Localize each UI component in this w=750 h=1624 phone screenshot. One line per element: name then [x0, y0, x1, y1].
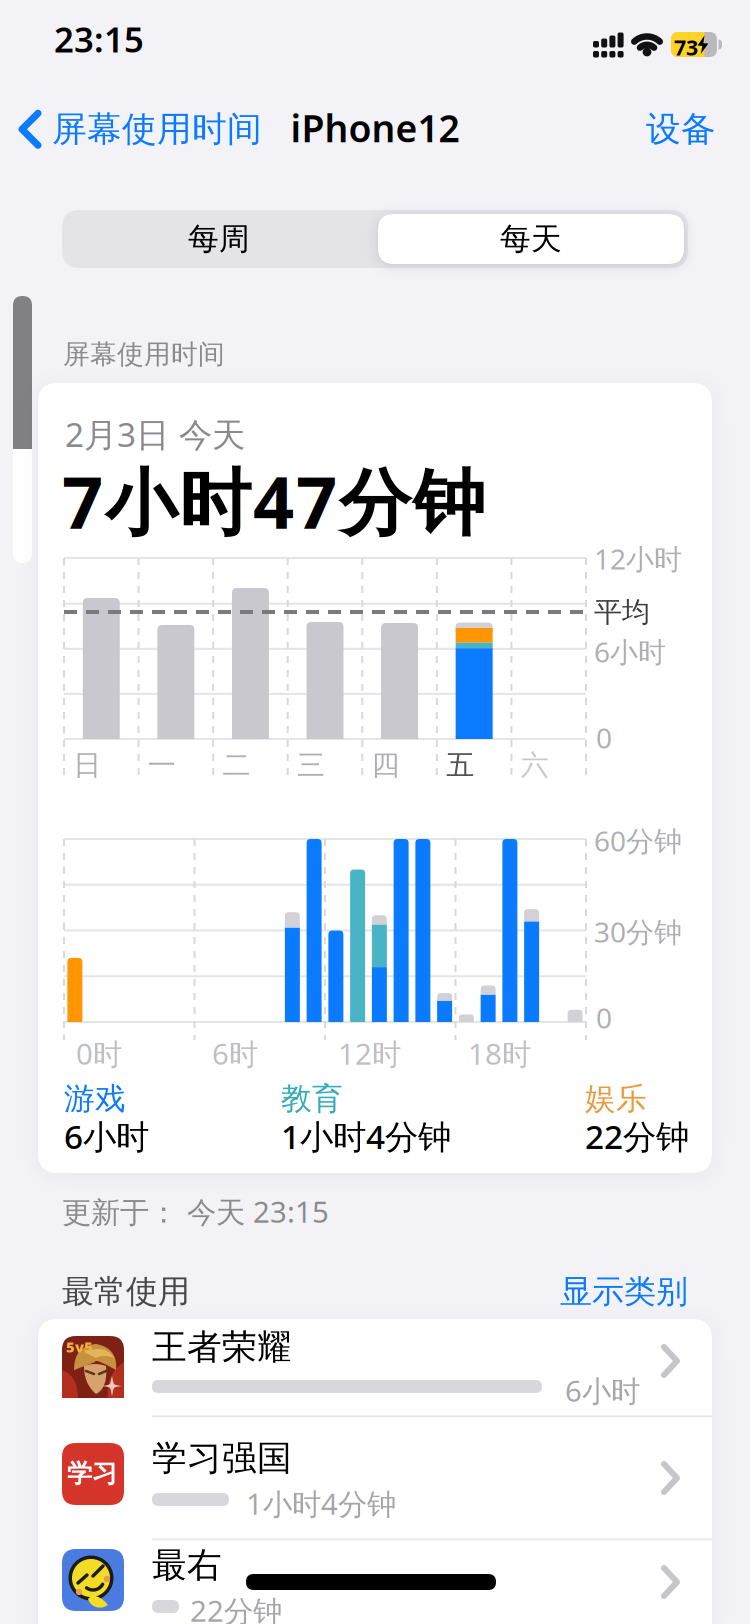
staticText: 教育	[281, 1080, 343, 1118]
button[interactable]: 最右	[38, 1539, 712, 1624]
staticText: 0	[596, 999, 612, 1036]
button[interactable]: 显示类别	[488, 1272, 688, 1311]
staticText: 屏幕使用时间	[52, 108, 262, 151]
button[interactable]: 学习	[38, 1417, 712, 1539]
staticText: 一	[148, 748, 176, 782]
staticText: 更新于： 今天 23:15	[62, 1192, 329, 1231]
staticText: 屏幕使用时间	[63, 338, 225, 371]
staticText: 设备	[646, 108, 716, 151]
staticText: 22分钟	[585, 1114, 689, 1158]
staticText: 30分钟	[594, 913, 682, 950]
staticText: 12小时	[594, 540, 682, 577]
staticText: 每天	[500, 220, 562, 258]
button[interactable]: 设备	[646, 108, 716, 151]
staticText: 5v5	[66, 1337, 93, 1356]
staticText: 18时	[468, 1034, 531, 1073]
staticText: iPhone12	[290, 103, 459, 153]
staticText: 学习	[67, 1458, 117, 1489]
staticText: 每周	[188, 220, 250, 258]
staticText: 二	[222, 748, 250, 782]
staticText: 1小时4分钟	[281, 1114, 451, 1158]
staticText: 最右	[152, 1544, 222, 1587]
staticText: 显示类别	[560, 1272, 688, 1311]
staticText: 0时	[76, 1034, 122, 1073]
staticText: 7小时47分钟	[62, 453, 485, 549]
staticText: 三	[297, 748, 325, 782]
button[interactable]: 每天	[378, 214, 684, 264]
staticText: 六	[521, 748, 549, 782]
staticText: 6时	[212, 1034, 258, 1073]
staticText: 四	[372, 748, 400, 782]
staticText: 2月3日 今天	[65, 412, 245, 456]
staticText: 60分钟	[594, 822, 682, 859]
staticText: 73	[674, 33, 698, 61]
staticText: 0	[596, 719, 612, 756]
staticText: 23:15	[54, 16, 144, 62]
staticText: 最常使用	[62, 1272, 190, 1311]
staticText: 12时	[338, 1034, 401, 1073]
staticText: 6小时	[594, 633, 666, 670]
staticText: 学习强国	[152, 1437, 292, 1480]
staticText: 平均	[594, 595, 650, 629]
staticText: 日	[73, 748, 101, 782]
button[interactable]: 每周	[64, 210, 374, 268]
staticText: 游戏	[64, 1080, 126, 1118]
staticText: 6小时	[64, 1114, 149, 1158]
staticText: 6小时	[565, 1371, 640, 1410]
staticText: 五	[446, 748, 474, 782]
staticText: 22分钟	[190, 1591, 282, 1624]
staticText: 娱乐	[585, 1080, 647, 1118]
staticText: 1小时4分钟	[246, 1484, 396, 1523]
staticText: 王者荣耀	[152, 1326, 292, 1369]
button[interactable]: 屏幕使用时间	[18, 108, 262, 151]
button[interactable]: 5v5	[38, 1319, 712, 1416]
